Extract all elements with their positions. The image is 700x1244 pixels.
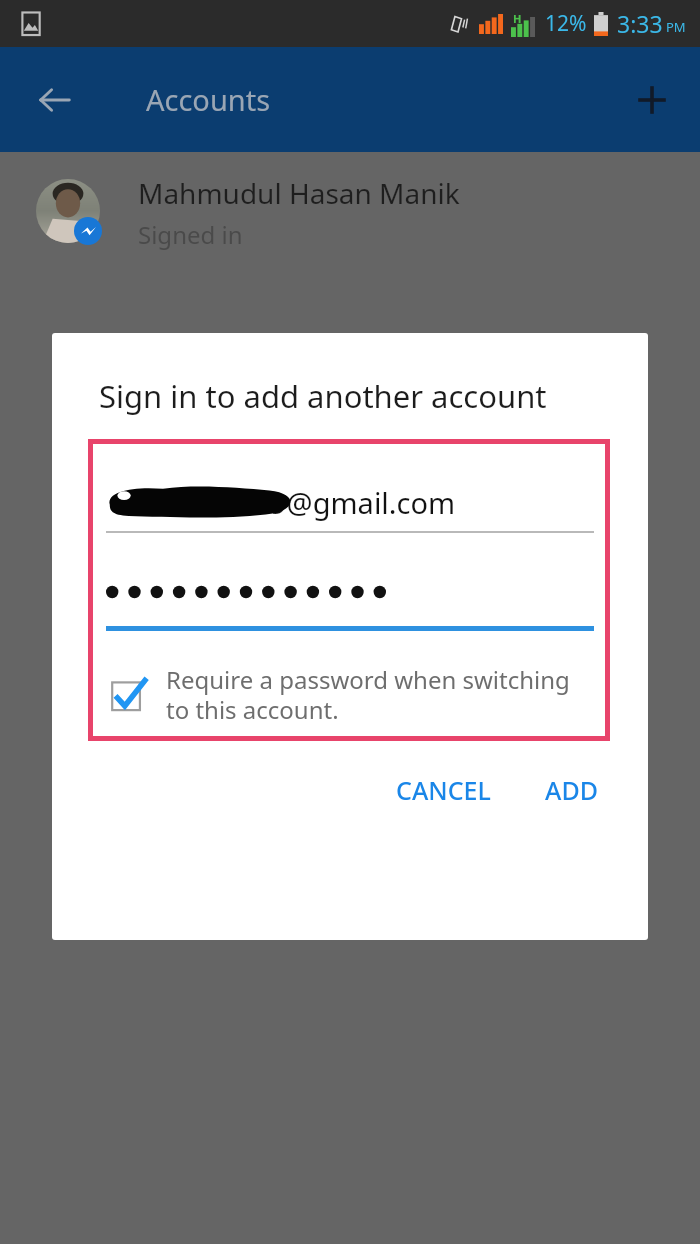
staticText: 3:33 [617, 8, 663, 39]
staticText: ADD [545, 773, 598, 807]
button[interactable]: Require a password when switching to thi… [106, 663, 594, 726]
staticText: H [513, 11, 522, 26]
button[interactable]: Add account [624, 72, 680, 128]
button[interactable]: CANCEL [380, 761, 507, 819]
staticText: PM [666, 18, 686, 36]
staticText: Signed in [138, 218, 243, 251]
staticText: 9@gmail.com [270, 483, 456, 522]
staticText: Mahmudul Hasan Manik [138, 174, 460, 212]
staticText: 12% [545, 9, 587, 38]
button[interactable]: Back [25, 70, 85, 130]
button[interactable]: ADD [529, 761, 614, 819]
staticText: CANCEL [396, 773, 491, 807]
staticText: Accounts [146, 80, 271, 119]
button[interactable]: Mahmudul Hasan Manik [0, 152, 700, 272]
staticText: Sign in to add another account [99, 375, 547, 417]
staticText: Require a password when switching to thi… [166, 663, 594, 726]
